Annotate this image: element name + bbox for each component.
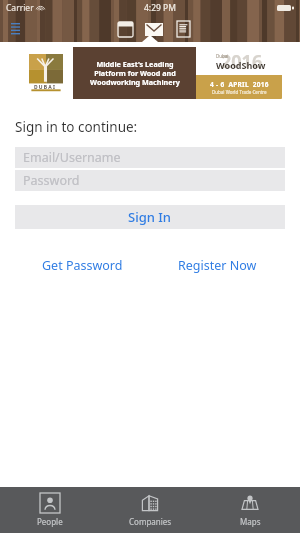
staticText: 4 - 6 APRIL 2016 [210, 80, 269, 89]
staticText: Register Now [178, 257, 257, 274]
staticText: Email/Username [23, 149, 121, 166]
button[interactable]: Email/Username [15, 147, 285, 168]
button[interactable]: Program [173, 19, 193, 39]
button[interactable]: Maps [200, 487, 300, 533]
button[interactable]: Get Password [38, 253, 127, 278]
staticText: Carrier [6, 2, 34, 14]
button[interactable]: People [0, 487, 100, 533]
staticText: Dubai World Trade Centre [212, 89, 267, 95]
button[interactable]: Companies [100, 487, 200, 533]
staticText: 4:29 PM [144, 2, 176, 14]
staticText: Get Password [42, 257, 123, 274]
staticText: DUBAI [34, 84, 57, 91]
staticText: Middle East's Leading Platform for Wood … [90, 59, 180, 88]
button[interactable]: DUBAI [18, 47, 282, 99]
staticText: People [37, 516, 63, 527]
staticText: WoodShow [216, 59, 266, 71]
button[interactable]: Sign In [15, 205, 285, 229]
button[interactable]: Password [15, 170, 285, 191]
staticText: Companies [129, 516, 172, 527]
staticText: Sign In [128, 208, 172, 226]
button[interactable]: Calendar [115, 19, 135, 39]
staticText: 2016 [221, 49, 263, 74]
button[interactable]: Messages [143, 18, 165, 40]
button[interactable]: Menu [8, 20, 26, 38]
button[interactable]: Register Now [174, 253, 261, 278]
staticText: Dubai [216, 53, 229, 59]
staticText: Sign in to continue: [15, 118, 138, 136]
staticText: Maps [240, 516, 261, 527]
staticText: Password [23, 172, 80, 189]
